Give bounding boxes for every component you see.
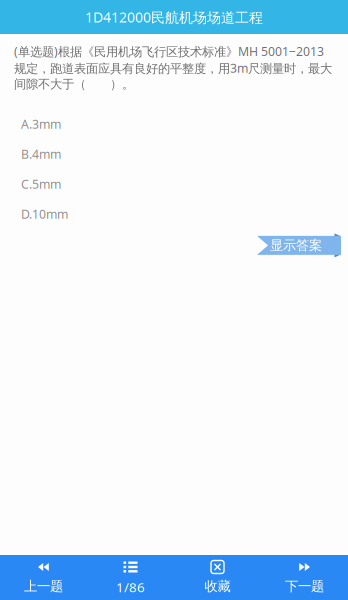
button[interactable]: 1/86 bbox=[87, 555, 174, 600]
staticText: 下一题 bbox=[285, 578, 324, 595]
staticText: (单选题)根据《民用机场飞行区技术标准》MH 5001−2013规定，跑道表面应… bbox=[14, 43, 332, 92]
staticText: A.3mm bbox=[21, 115, 61, 132]
button[interactable]: 下一题 bbox=[261, 555, 348, 600]
staticText: 1/86 bbox=[116, 578, 145, 596]
staticText: B.4mm bbox=[21, 145, 61, 162]
button[interactable]: 收藏 bbox=[174, 555, 261, 600]
staticText: 收藏 bbox=[204, 578, 230, 595]
staticText: 显示答案 bbox=[270, 237, 322, 254]
staticText: D.10mm bbox=[21, 205, 68, 222]
staticText: 上一题 bbox=[24, 578, 63, 595]
staticText: C.5mm bbox=[21, 175, 61, 192]
button[interactable]: 上一题 bbox=[0, 555, 87, 600]
staticText: 1D412000民航机场场道工程 bbox=[85, 7, 263, 26]
button[interactable]: 显示答案 bbox=[257, 236, 341, 255]
